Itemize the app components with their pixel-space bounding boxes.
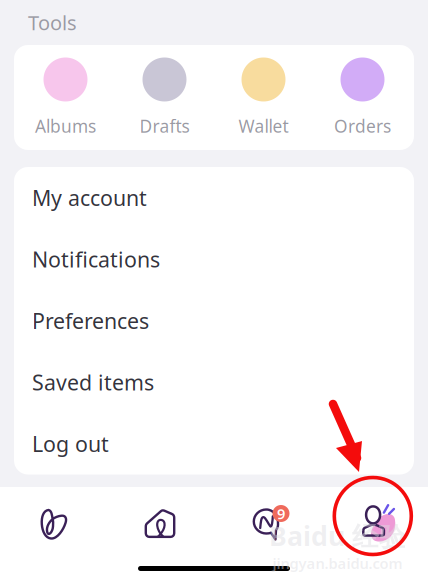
button[interactable]: Drafts	[115, 53, 214, 141]
button[interactable]: Notifications	[14, 228, 414, 290]
button[interactable]: Home	[107, 501, 214, 547]
staticText: Drafts	[139, 114, 189, 137]
staticText: Orders	[334, 114, 391, 137]
button[interactable]: Log out	[14, 413, 414, 474]
staticText: Baidu 经验	[269, 518, 406, 554]
button[interactable]: Preferences	[14, 290, 414, 351]
staticText: Log out	[32, 430, 109, 458]
button[interactable]: Saved items	[14, 351, 414, 413]
staticText: jingyan.baidu.com	[272, 553, 402, 573]
staticText: Albums	[35, 114, 96, 137]
staticText: Wallet	[238, 114, 288, 137]
button[interactable]: Wallet	[214, 53, 313, 141]
button[interactable]: Albums	[16, 53, 115, 141]
button[interactable]: My account	[14, 167, 414, 228]
staticText: My account	[32, 184, 147, 212]
staticText: Preferences	[32, 307, 149, 335]
staticText: Tools	[28, 9, 77, 36]
staticText: Saved items	[32, 368, 154, 396]
staticText: Notifications	[32, 245, 160, 273]
button[interactable]: Messages, 9 unread	[214, 501, 321, 547]
button[interactable]: Orders	[313, 53, 412, 141]
staticText: 9	[277, 504, 285, 523]
button[interactable]: Favorites	[0, 501, 107, 547]
button[interactable]: Profile	[321, 501, 428, 547]
